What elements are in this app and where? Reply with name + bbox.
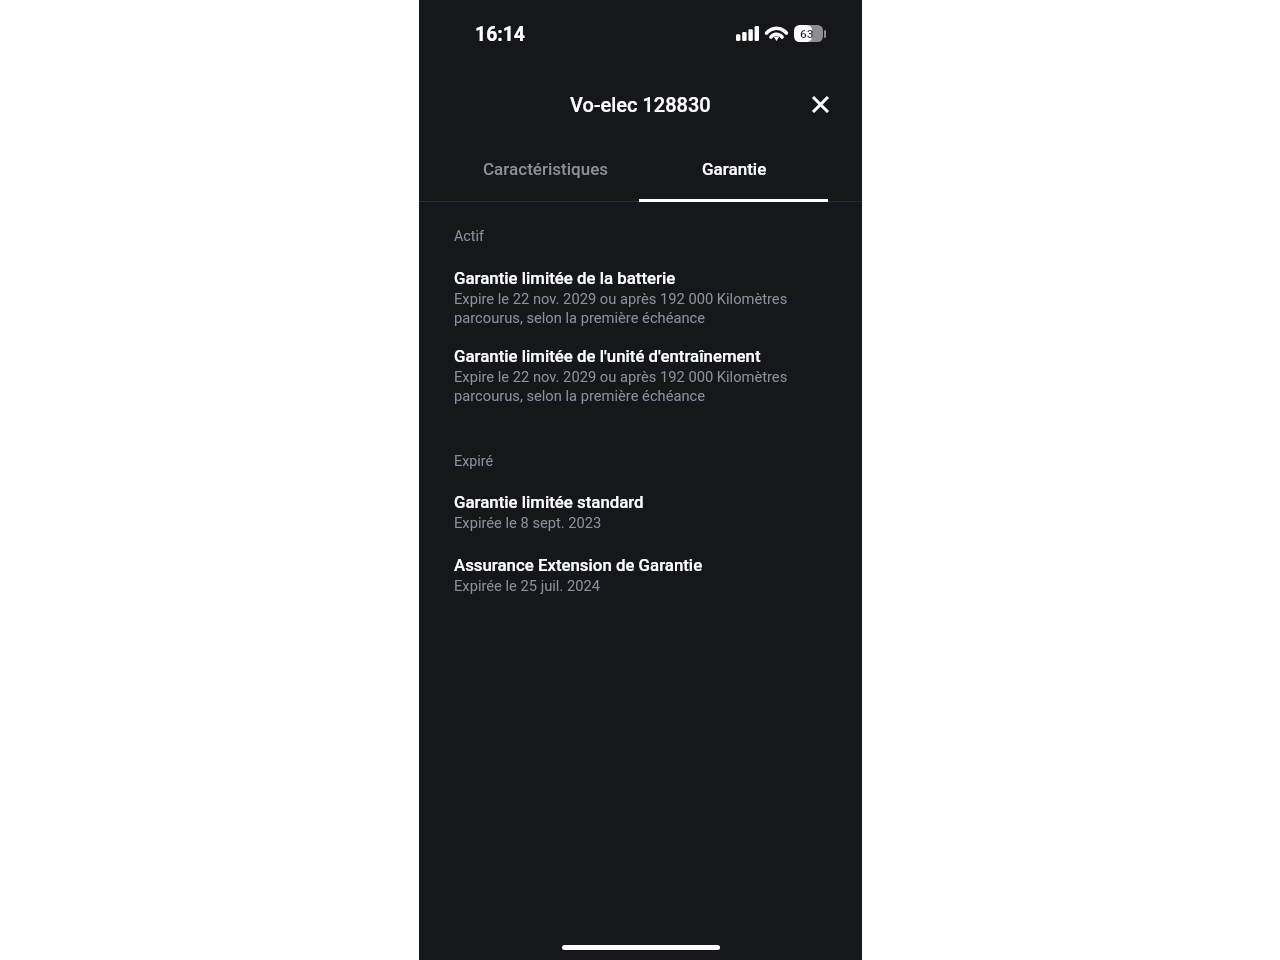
staticText: Caractéristiques [483,159,609,179]
button[interactable]: Caractéristiques [452,135,640,202]
button[interactable]: Fermer [804,88,836,120]
staticText: Expiré [454,453,494,470]
staticText: Vo-elec 128830 [570,93,711,116]
button[interactable]: Garantie limitée de la batterie [454,268,834,326]
staticText: Garantie limitée de la batterie [454,268,676,288]
staticText: Garantie limitée standard [454,492,644,512]
staticText: Garantie limitée de l'unité d'entraîneme… [454,346,761,366]
staticText: Expirée le 25 juil. 2024 [454,577,600,594]
staticText: Expire le 22 nov. 2029 ou après 192 000 … [454,368,834,404]
staticText: Assurance Extension de Garantie [454,555,703,575]
button[interactable]: Assurance Extension de Garantie [454,555,834,594]
staticText: Expire le 22 nov. 2029 ou après 192 000 … [454,290,834,326]
button[interactable]: Garantie limitée de l'unité d'entraîneme… [454,346,834,404]
staticText: Garantie [702,159,767,179]
staticText: Actif [454,228,484,245]
button[interactable]: Garantie limitée standard [454,492,834,531]
staticText: Expirée le 8 sept. 2023 [454,514,602,531]
staticText: 16:14 [475,23,525,46]
button[interactable]: Garantie [640,135,829,202]
staticText: 63 [800,27,814,41]
